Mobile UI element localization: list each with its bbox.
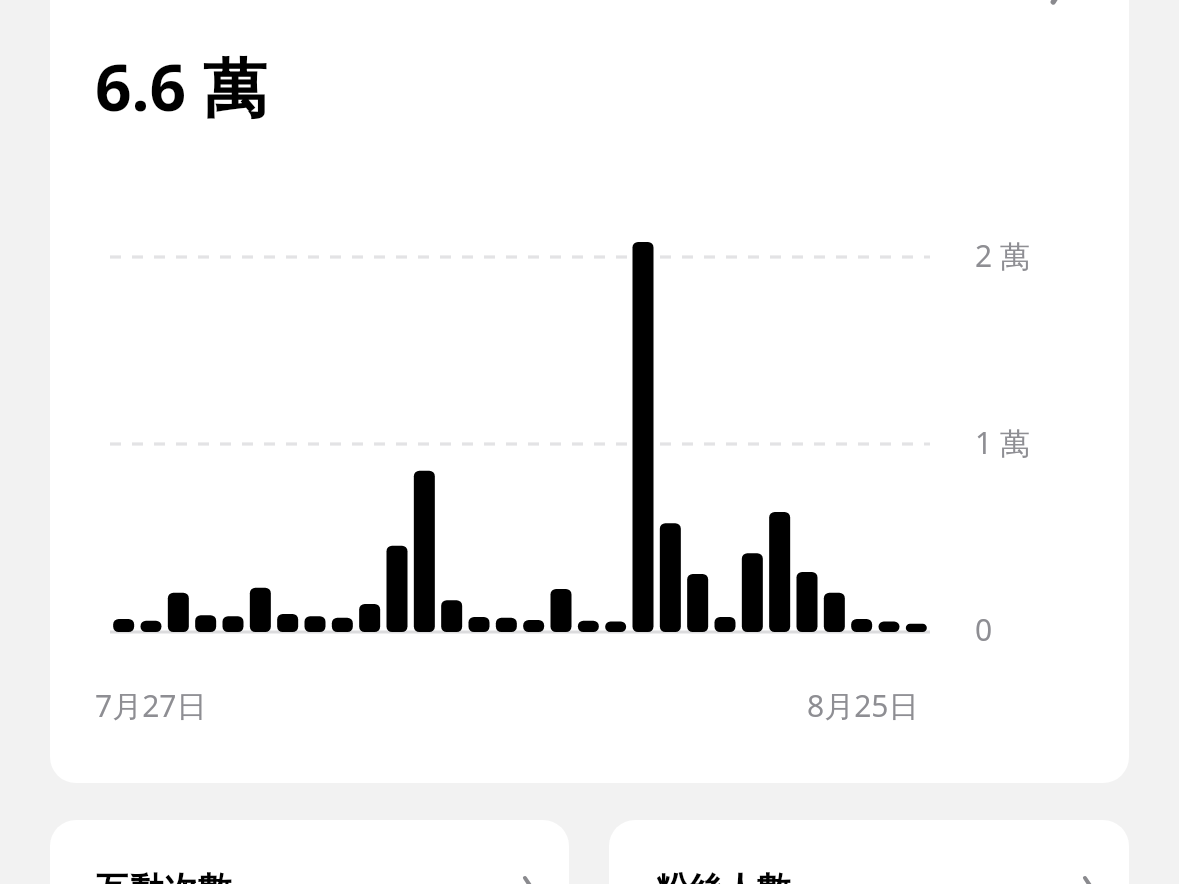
- button[interactable]: 粉絲人數: [609, 820, 1129, 884]
- staticText: 互動次數: [96, 868, 515, 884]
- staticText: 1 萬: [975, 422, 1030, 463]
- button[interactable]: 瀏覽次數: [50, 0, 1129, 783]
- staticText: 6.6 萬: [95, 43, 267, 130]
- button[interactable]: 查看瀏覽次數詳情: [1038, 0, 1084, 8]
- staticText: 粉絲人數: [655, 868, 1075, 884]
- staticText: 2 萬: [975, 235, 1030, 276]
- button[interactable]: 互動次數: [50, 820, 569, 884]
- staticText: 0: [975, 609, 993, 650]
- staticText: 8月25日: [807, 685, 919, 726]
- staticText: 7月27日: [95, 685, 207, 726]
